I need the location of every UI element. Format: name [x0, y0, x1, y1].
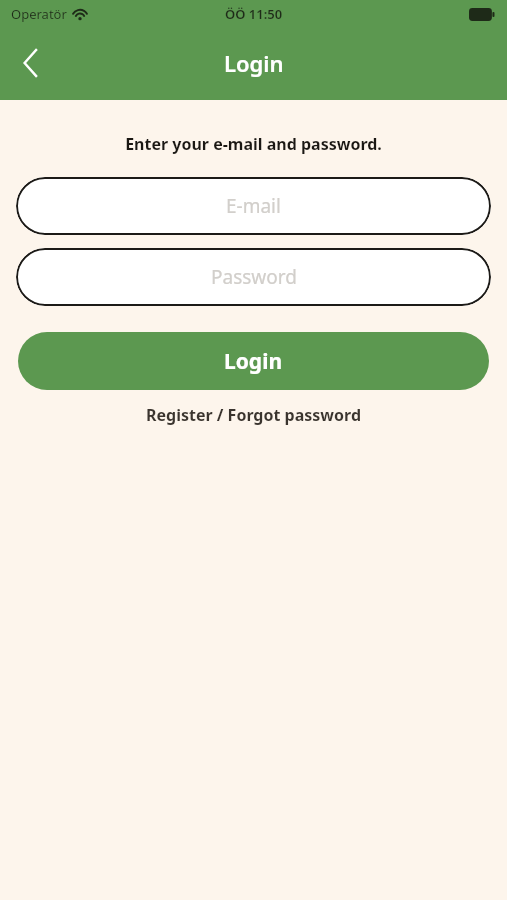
staticText: Register / Forgot password	[146, 404, 361, 426]
button[interactable]: Register / Forgot password	[0, 398, 507, 432]
staticText: E-mail	[226, 193, 281, 219]
button[interactable]: Password	[16, 248, 491, 306]
staticText: Operatör	[11, 5, 67, 23]
staticText: Login	[224, 48, 284, 78]
staticText: Login	[224, 347, 283, 376]
button[interactable]: Back	[10, 42, 52, 84]
staticText: Enter your e-mail and password.	[0, 133, 507, 155]
button[interactable]: E-mail	[16, 177, 491, 235]
button[interactable]: Login	[18, 332, 489, 390]
staticText: ÖÖ 11:50	[225, 5, 283, 23]
staticText: Password	[211, 264, 297, 290]
